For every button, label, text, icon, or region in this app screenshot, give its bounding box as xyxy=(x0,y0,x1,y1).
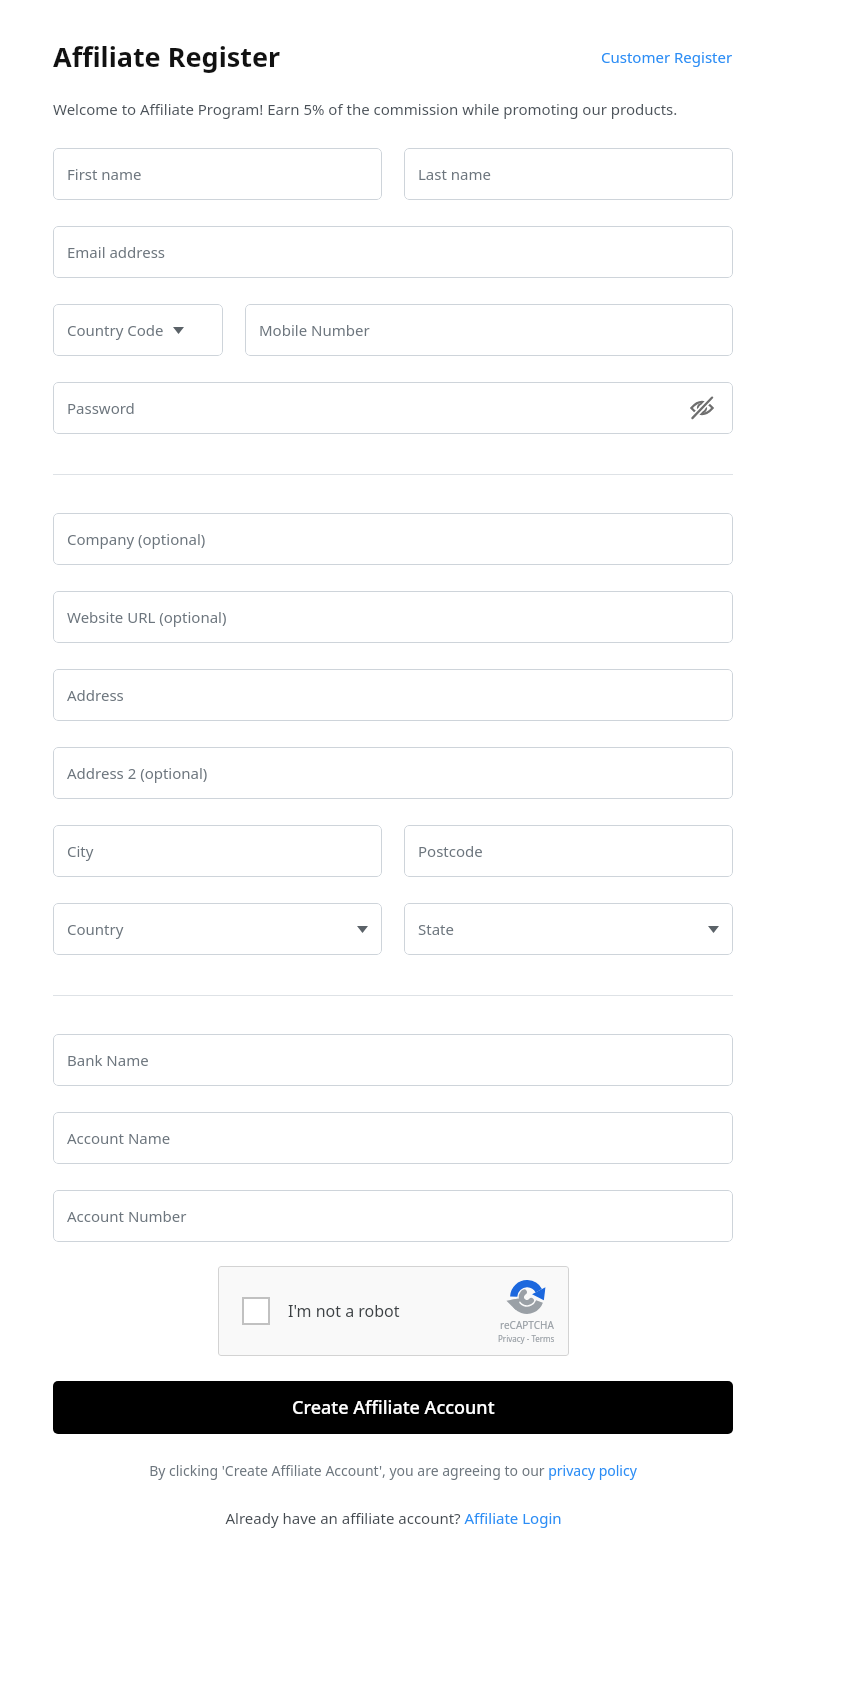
button[interactable]: Last name xyxy=(404,148,733,200)
button[interactable]: Address 2 (optional) xyxy=(53,747,733,799)
button[interactable]: Country Code xyxy=(53,304,223,356)
button[interactable]: City xyxy=(53,825,382,877)
staticText: Company (optional) xyxy=(67,529,206,549)
staticText: Already have an affiliate account? Affil… xyxy=(225,1508,562,1528)
staticText: Address xyxy=(67,685,124,705)
staticText: Country Code xyxy=(67,320,164,340)
staticText: Customer Register xyxy=(601,47,733,67)
button[interactable]: Country xyxy=(53,903,382,955)
staticText: Password xyxy=(67,398,135,418)
staticText: Postcode xyxy=(418,841,483,861)
button[interactable]: State xyxy=(404,903,733,955)
button[interactable]: Website URL (optional) xyxy=(53,591,733,643)
staticText: Affiliate Register xyxy=(53,38,281,75)
staticText: I'm not a robot xyxy=(288,1300,400,1322)
button[interactable]: Company (optional) xyxy=(53,513,733,565)
button[interactable]: Password xyxy=(53,382,733,434)
staticText: Privacy - Terms xyxy=(498,1333,555,1344)
staticText: State xyxy=(418,919,454,939)
button[interactable]: Postcode xyxy=(404,825,733,877)
button[interactable]: Address xyxy=(53,669,733,721)
staticText: Account Number xyxy=(67,1206,187,1226)
staticText: Create Affiliate Account xyxy=(292,1395,495,1420)
staticText: Welcome to Affiliate Program! Earn 5% of… xyxy=(53,99,678,119)
button[interactable]: First name xyxy=(53,148,382,200)
staticText: Bank Name xyxy=(67,1050,149,1070)
staticText: reCAPTCHA xyxy=(500,1318,554,1332)
button[interactable]: Already have an affiliate account? Affil… xyxy=(53,1508,733,1528)
button[interactable]: Bank Name xyxy=(53,1034,733,1086)
staticText: First name xyxy=(67,164,142,184)
button[interactable]: By clicking 'Create Affiliate Account', … xyxy=(53,1461,733,1480)
staticText: Mobile Number xyxy=(259,320,370,340)
button[interactable]: Account Number xyxy=(53,1190,733,1242)
button[interactable]: Mobile Number xyxy=(245,304,733,356)
staticText: Website URL (optional) xyxy=(67,607,227,627)
button[interactable]: Show password xyxy=(685,391,719,425)
staticText: Account Name xyxy=(67,1128,171,1148)
staticText: Address 2 (optional) xyxy=(67,763,208,783)
button[interactable]: Customer Register xyxy=(601,43,733,71)
staticText: Country xyxy=(67,919,124,939)
button[interactable]: Email address xyxy=(53,226,733,278)
button[interactable]: Create Affiliate Account xyxy=(53,1381,733,1434)
button[interactable]: Account Name xyxy=(53,1112,733,1164)
staticText: By clicking 'Create Affiliate Account', … xyxy=(149,1461,637,1480)
staticText: Last name xyxy=(418,164,491,184)
staticText: Email address xyxy=(67,242,166,262)
button[interactable]: I'm not a robot xyxy=(218,1266,569,1356)
staticText: City xyxy=(67,841,94,861)
